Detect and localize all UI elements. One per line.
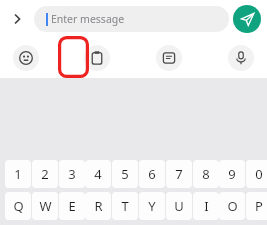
button[interactable]: T: [112, 192, 138, 220]
staticText: 9: [228, 165, 236, 183]
button[interactable]: 1: [5, 160, 31, 188]
staticText: 7: [175, 165, 183, 183]
staticText: Q: [13, 197, 24, 215]
button[interactable]: 8: [193, 160, 219, 188]
button[interactable]: Send: [233, 5, 261, 33]
button[interactable]: Emoji: [13, 45, 39, 71]
button[interactable]: 3: [59, 160, 85, 188]
button[interactable]: Clipboard: [84, 45, 110, 71]
staticText: Enter message: [51, 12, 125, 26]
staticText: R: [94, 197, 103, 215]
button[interactable]: 2: [32, 160, 58, 188]
staticText: 6: [148, 165, 156, 183]
button[interactable]: Text: [156, 45, 182, 71]
button[interactable]: W: [32, 192, 58, 220]
staticText: U: [174, 197, 184, 215]
button[interactable]: R: [85, 192, 111, 220]
button[interactable]: Y: [139, 192, 165, 220]
staticText: P: [255, 197, 263, 215]
button[interactable]: O: [219, 192, 245, 220]
staticText: 4: [94, 165, 102, 183]
button[interactable]: P: [246, 192, 267, 220]
button[interactable]: 5: [112, 160, 138, 188]
button[interactable]: U: [166, 192, 192, 220]
button[interactable]: Expand: [6, 8, 28, 30]
button[interactable]: Q: [5, 192, 31, 220]
button[interactable]: I: [193, 192, 219, 220]
button[interactable]: 0: [246, 160, 267, 188]
staticText: Y: [148, 197, 156, 215]
button[interactable]: 9: [219, 160, 245, 188]
button[interactable]: Voice input: [228, 45, 254, 71]
button[interactable]: 6: [139, 160, 165, 188]
staticText: 0: [255, 165, 263, 183]
staticText: 5: [121, 165, 129, 183]
button[interactable]: E: [59, 192, 85, 220]
button[interactable]: 4: [85, 160, 111, 188]
button[interactable]: 7: [166, 160, 192, 188]
staticText: E: [68, 197, 76, 215]
staticText: 8: [202, 165, 210, 183]
staticText: 3: [68, 165, 76, 183]
staticText: O: [227, 197, 238, 215]
staticText: I: [204, 197, 209, 215]
staticText: T: [121, 197, 129, 215]
staticText: 2: [41, 165, 49, 183]
staticText: W: [39, 197, 52, 215]
button[interactable]: Enter message: [34, 6, 229, 32]
staticText: 1: [14, 165, 22, 183]
